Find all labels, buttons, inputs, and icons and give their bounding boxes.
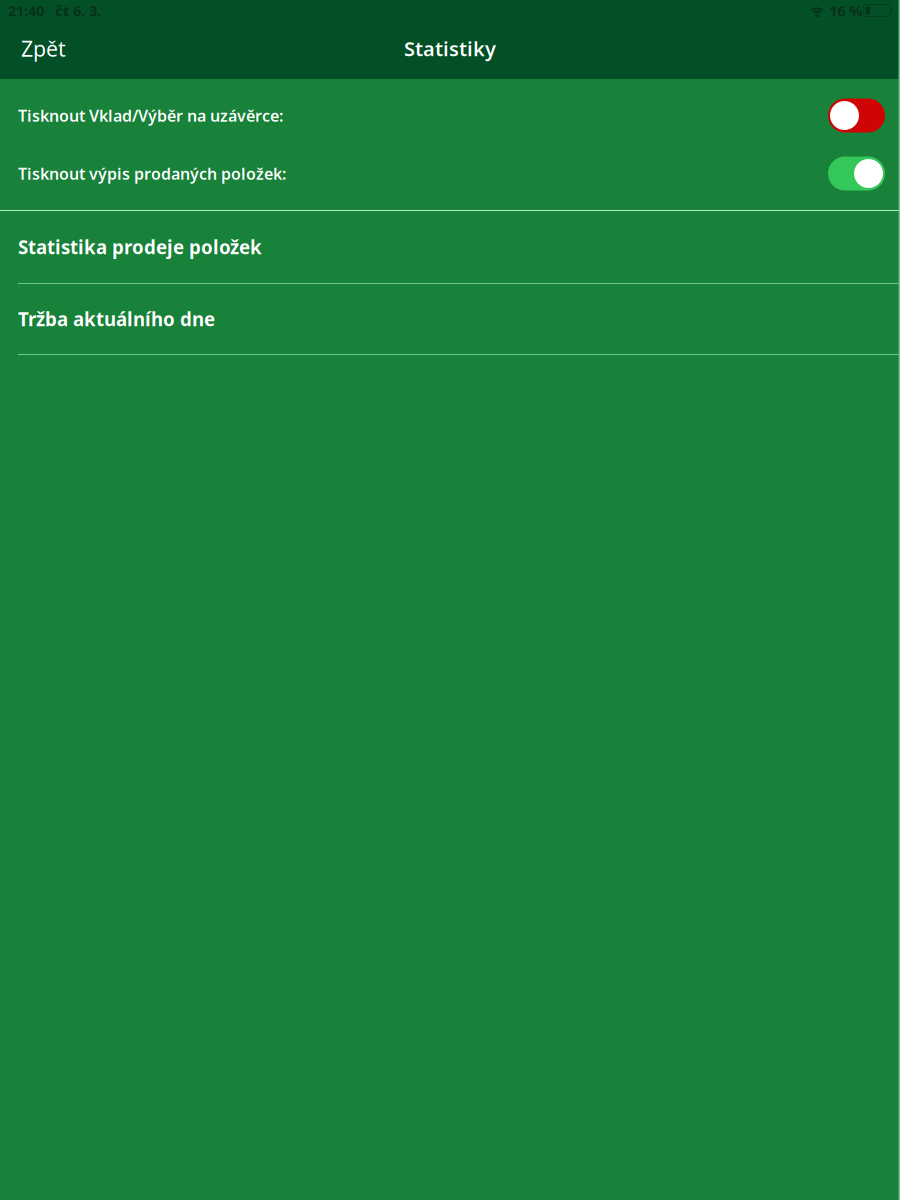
staticText: Tisknout výpis prodaných položek: — [18, 163, 286, 184]
button[interactable]: Statistika prodeje položek — [0, 211, 900, 283]
staticText: čt 6. 3. — [55, 1, 101, 20]
button[interactable]: Tisknout Vklad/Výběr na uzávěrce — [828, 98, 885, 132]
staticText: Tisknout Vklad/Výběr na uzávěrce: — [18, 105, 283, 126]
staticText: Statistiky — [404, 35, 496, 62]
staticText: 16 % — [829, 1, 862, 20]
staticText: Tržba aktuálního dne — [18, 307, 215, 331]
staticText: Statistika prodeje položek — [18, 235, 262, 259]
button[interactable]: Tisknout výpis prodaných položek — [828, 156, 885, 190]
button[interactable]: Zpět — [0, 25, 87, 72]
button[interactable]: Tržba aktuálního dne — [0, 284, 900, 354]
staticText: 21:40 — [8, 1, 44, 20]
staticText: Zpět — [21, 34, 66, 63]
